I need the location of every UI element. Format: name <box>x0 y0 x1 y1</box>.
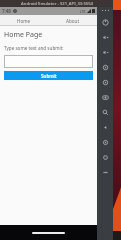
staticText: 7:48 <box>2 8 11 14</box>
button[interactable]: Volume down <box>97 45 113 60</box>
button[interactable]: Submit <box>4 71 93 80</box>
button[interactable]: Take screenshot <box>97 90 113 105</box>
staticText: Home Page <box>4 30 43 40</box>
button[interactable] <box>4 55 93 68</box>
staticText: About <box>66 18 80 24</box>
staticText: Submit <box>41 73 57 79</box>
button[interactable]: Rotate right <box>97 75 113 90</box>
button[interactable]: Volume up <box>97 30 113 45</box>
staticText: Home <box>17 18 31 24</box>
button[interactable]: Back <box>97 120 113 135</box>
button[interactable]: Power <box>97 15 113 30</box>
button[interactable]: Overview <box>97 150 113 165</box>
button[interactable]: Rotate left <box>97 60 113 75</box>
staticText: LTE <box>80 9 86 14</box>
button[interactable]: Android Emulator - S21_API_33:5554 <box>0 0 113 7</box>
button[interactable]: Home <box>97 135 113 150</box>
staticText: Type some text and submit: <box>4 45 64 51</box>
button[interactable]: Home <box>0 15 48 26</box>
button[interactable]: About <box>48 15 97 26</box>
button[interactable]: More <box>97 165 113 180</box>
button[interactable]: Zoom <box>97 105 113 120</box>
staticText: Android Emulator - S21_API_33:5554 <box>21 1 93 7</box>
